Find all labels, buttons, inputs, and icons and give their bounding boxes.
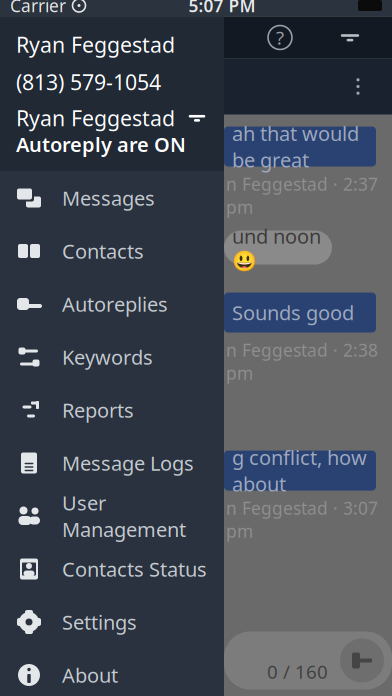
staticText: 0 / 160 — [267, 659, 328, 684]
staticText: n Feggestad · 3:07 pm — [226, 497, 378, 543]
staticText: (813) 579-1054 — [16, 68, 161, 96]
staticText: Settings — [62, 609, 137, 635]
staticText: Reports — [62, 397, 134, 423]
button[interactable]: Contacts — [0, 224, 224, 277]
button[interactable]: User Management — [0, 489, 224, 542]
staticText: Messages — [62, 185, 155, 211]
staticText: Sounds good — [232, 299, 354, 326]
staticText: Keywords — [62, 344, 153, 370]
button[interactable]: About — [0, 648, 224, 696]
button[interactable]: Help — [260, 17, 300, 57]
staticText: g conflict, how about — [232, 444, 367, 497]
staticText: n Feggestad · 2:38 pm — [226, 338, 378, 384]
staticText: Contacts — [62, 238, 144, 264]
button[interactable]: Reports — [0, 383, 224, 436]
staticText: Ryan Feggestad — [16, 104, 175, 132]
staticText: Ryan Feggestad — [16, 30, 175, 59]
button[interactable]: Ryan Feggestad — [0, 105, 224, 131]
staticText: User Management — [62, 489, 186, 542]
staticText: About — [62, 662, 118, 688]
button[interactable]: Message Logs — [0, 436, 224, 489]
button[interactable]: Contacts Status — [0, 542, 224, 595]
button[interactable]: Messages — [0, 171, 224, 224]
staticText: n Feggestad · 2:37 pm — [226, 172, 378, 218]
staticText: ah that would be great — [232, 120, 359, 173]
button[interactable]: More options — [338, 64, 378, 108]
staticText: 5:07 PM — [188, 0, 255, 17]
staticText: Autoreplies — [62, 291, 168, 317]
button[interactable]: Settings — [0, 595, 224, 648]
button[interactable]: Keywords — [0, 330, 224, 383]
button[interactable]: Collapse — [330, 17, 370, 57]
button[interactable]: Send — [338, 636, 386, 684]
staticText: Message Logs — [62, 450, 194, 476]
staticText: Carrier — [10, 0, 66, 17]
button[interactable]: Autoreplies — [0, 277, 224, 330]
staticText: ? — [276, 25, 284, 50]
staticText: Contacts Status — [62, 556, 207, 582]
staticText: Autoreply are ON — [16, 131, 186, 158]
staticText: und noon 😃 — [232, 223, 321, 272]
